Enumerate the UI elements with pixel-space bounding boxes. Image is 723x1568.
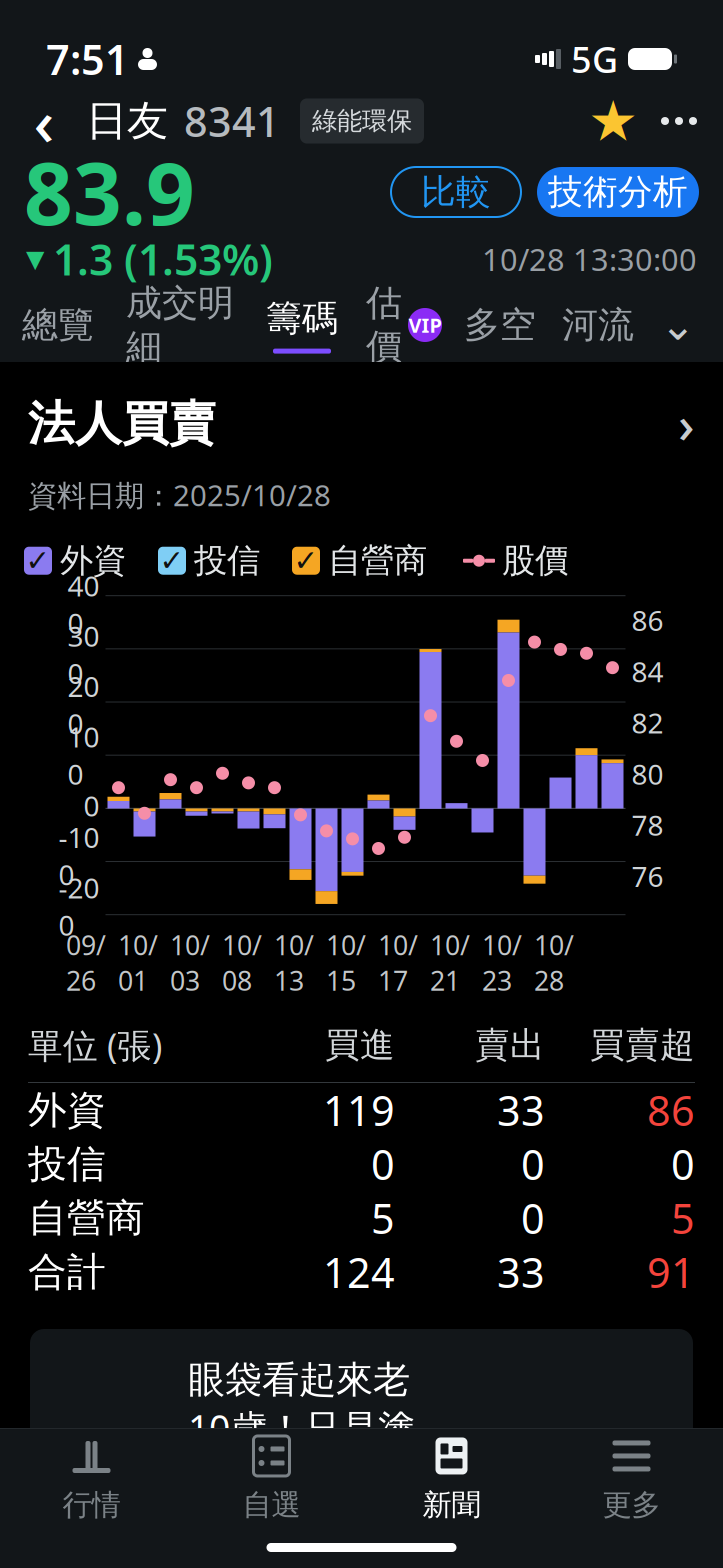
- staticText: 0: [371, 1137, 395, 1191]
- staticText: 10/15: [326, 927, 366, 998]
- staticText: 33: [497, 1083, 545, 1137]
- staticText: 眼袋看起來老10歲！只是塗屈臣氏買的: [188, 1357, 415, 1498]
- staticText: 300: [67, 617, 99, 692]
- button[interactable]: 成交明細: [126, 281, 234, 369]
- button[interactable]: 技術分析: [537, 167, 699, 217]
- staticText: 10/28 13:30:00: [482, 239, 697, 279]
- staticText: 單位 (張): [28, 1022, 162, 1068]
- staticText: ✓: [159, 544, 184, 577]
- staticText: 80: [631, 755, 663, 792]
- staticText: 09/26: [66, 927, 106, 998]
- button[interactable]: 河流: [562, 303, 634, 347]
- button[interactable]: ✓: [24, 540, 126, 581]
- staticText: 投信: [28, 1140, 106, 1188]
- staticText: 10/23: [482, 927, 522, 998]
- button[interactable]: ✓: [158, 540, 260, 581]
- button[interactable]: 新聞: [361, 1429, 541, 1529]
- staticText: 10/13: [274, 927, 314, 998]
- staticText: 外資: [28, 1086, 106, 1134]
- staticText: 10/03: [170, 927, 210, 998]
- staticText: ✓: [25, 544, 50, 577]
- staticText: ⌄: [660, 301, 696, 349]
- staticText: ★: [588, 89, 638, 153]
- button[interactable]: 比較: [391, 167, 521, 217]
- staticText: 5: [371, 1191, 395, 1245]
- staticText: 0: [671, 1137, 695, 1191]
- staticText: 84: [631, 653, 663, 690]
- button[interactable]: 多空: [464, 303, 536, 347]
- staticText: 91: [647, 1245, 695, 1299]
- button[interactable]: 行情: [1, 1429, 181, 1529]
- staticText: 8341: [184, 94, 280, 148]
- staticText: 合計: [28, 1248, 106, 1296]
- staticText: 多空: [464, 303, 536, 347]
- staticText: 綠能環保: [312, 105, 412, 136]
- staticText: 「這個」: [188, 1506, 336, 1552]
- staticText: 新聞: [422, 1487, 480, 1523]
- staticText: 78: [631, 806, 663, 844]
- staticText: ✓: [293, 544, 318, 577]
- staticText: 124: [323, 1245, 395, 1299]
- staticText: 河流: [562, 303, 634, 347]
- staticText: 籌碼: [266, 296, 338, 341]
- staticText: 10/28: [534, 927, 574, 998]
- staticText: -200: [58, 869, 99, 943]
- staticText: 外資: [60, 540, 126, 581]
- staticText: 估價: [366, 281, 402, 369]
- staticText: 10/17: [378, 927, 418, 998]
- staticText: 投信: [194, 540, 260, 581]
- staticText: 比較: [421, 171, 491, 213]
- staticText: 成交明細: [126, 281, 234, 369]
- staticText: 自營商: [28, 1194, 145, 1242]
- staticText: 83.9: [24, 135, 195, 249]
- staticText: 1.3 (1.53%): [53, 231, 273, 287]
- button[interactable]: 估價: [366, 281, 442, 369]
- staticText: 82: [631, 704, 663, 741]
- staticText: 日友: [86, 96, 168, 146]
- staticText: 10/08: [222, 927, 262, 998]
- staticText: 7:51: [46, 32, 129, 86]
- staticText: 買賣超: [590, 1024, 695, 1066]
- staticText: ▼: [26, 245, 44, 273]
- staticText: 33: [497, 1245, 545, 1299]
- staticText: 技術分析: [548, 171, 688, 213]
- staticText: 200: [67, 668, 99, 742]
- staticText: 資料日期：2025/10/28: [28, 475, 331, 514]
- staticText: 0: [521, 1191, 545, 1245]
- button[interactable]: 綠能環保: [300, 98, 424, 143]
- staticText: VIP: [408, 312, 441, 338]
- staticText: 更多: [602, 1487, 660, 1523]
- staticText: 股價: [502, 540, 568, 581]
- staticText: 自選: [242, 1487, 300, 1523]
- staticText: 賣出: [475, 1024, 545, 1066]
- button[interactable]: 展開分頁列表: [655, 302, 701, 348]
- button[interactable]: 更多: [541, 1429, 721, 1529]
- staticText: ›: [678, 390, 695, 457]
- staticText: 76: [631, 858, 663, 895]
- staticText: 10/01: [118, 927, 158, 998]
- staticText: 買進: [325, 1024, 395, 1066]
- button[interactable]: 籌碼: [266, 296, 338, 354]
- button[interactable]: 加入自選股: [585, 93, 641, 149]
- staticText: 86: [647, 1083, 695, 1137]
- staticText: 自營商: [328, 540, 427, 581]
- staticText: 5: [671, 1191, 695, 1245]
- staticText: 100: [67, 718, 99, 792]
- button[interactable]: 更多選項: [651, 93, 707, 149]
- button[interactable]: 自選: [181, 1429, 361, 1529]
- staticText: ‹: [33, 78, 54, 163]
- staticText: 法人買賣: [28, 395, 216, 452]
- button[interactable]: ✓: [292, 540, 427, 581]
- button[interactable]: 眼袋看起來老10歲！只是塗屈臣氏買的: [30, 1329, 693, 1568]
- button[interactable]: 總覽: [22, 303, 94, 347]
- staticText: 0: [521, 1137, 545, 1191]
- staticText: -100: [58, 819, 99, 893]
- staticText: 400: [67, 567, 99, 641]
- button[interactable]: 法人買賣: [0, 362, 723, 514]
- button[interactable]: 返回: [16, 92, 72, 150]
- staticText: 5G: [571, 35, 618, 83]
- staticText: 0: [83, 787, 99, 824]
- staticText: 86: [631, 602, 663, 639]
- staticText: 行情: [62, 1487, 120, 1523]
- staticText: 10/21: [430, 927, 470, 998]
